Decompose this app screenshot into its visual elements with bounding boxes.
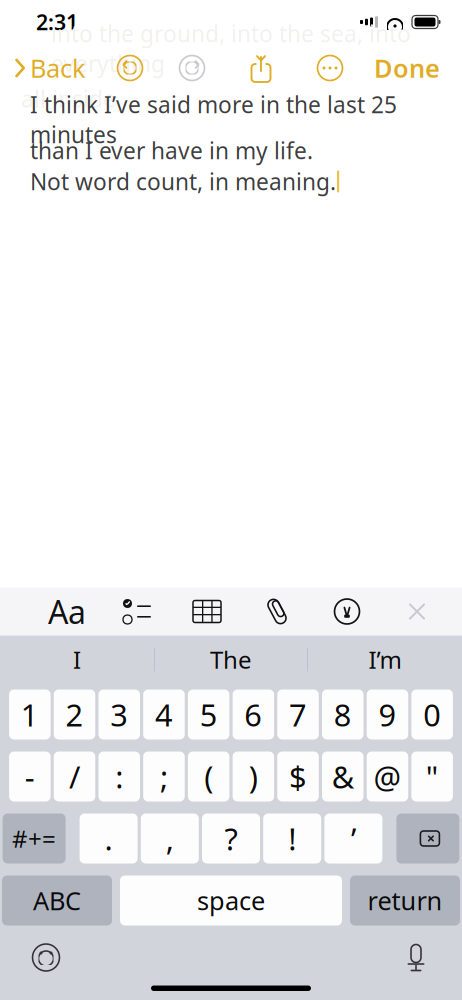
staticText: 3: [110, 694, 128, 735]
staticText: 7: [289, 694, 307, 735]
button[interactable]: The: [155, 637, 307, 681]
staticText: ;: [160, 756, 168, 797]
staticText: 6: [244, 694, 262, 735]
button[interactable]: @: [367, 751, 408, 801]
button[interactable]: 9: [367, 689, 408, 739]
button[interactable]: 1: [9, 689, 51, 739]
staticText: 5: [200, 694, 218, 735]
button[interactable]: space: [120, 875, 342, 925]
button[interactable]: Back: [0, 43, 86, 93]
button[interactable]: 7: [277, 689, 319, 739]
staticText: &: [332, 756, 354, 797]
staticText: Aa: [48, 590, 86, 633]
staticText: I think I’ve said more in the last 25 mi…: [30, 89, 397, 150]
button[interactable]: Close keyboard: [394, 589, 440, 633]
button[interactable]: I: [0, 637, 154, 681]
button[interactable]: Share: [242, 51, 280, 85]
button[interactable]: More: [310, 49, 350, 87]
staticText: :: [115, 756, 123, 797]
staticText: 4: [155, 694, 173, 735]
staticText: Done: [374, 51, 440, 85]
staticText: I: [73, 644, 81, 675]
staticText: ABC: [33, 884, 81, 917]
button[interactable]: :: [98, 751, 140, 801]
staticText: ): [249, 756, 258, 797]
button[interactable]: Redo: [172, 49, 212, 87]
button[interactable]: Undo: [110, 49, 150, 87]
button[interactable]: ;: [143, 751, 185, 801]
button[interactable]: Dictate: [392, 935, 462, 979]
button[interactable]: -: [9, 751, 51, 801]
button[interactable]: 4: [143, 689, 185, 739]
button[interactable]: Emoji: [0, 935, 70, 979]
staticText: !: [288, 818, 296, 859]
staticText: space: [197, 884, 265, 917]
button[interactable]: 6: [233, 689, 274, 739]
staticText: #+=: [12, 823, 56, 854]
button[interactable]: ABC: [2, 875, 112, 925]
button[interactable]: return: [350, 875, 460, 925]
staticText: 0: [423, 694, 441, 735]
button[interactable]: 0: [411, 689, 453, 739]
staticText: .: [105, 818, 113, 859]
button[interactable]: Delete: [396, 813, 459, 863]
staticText: 2:31: [36, 8, 78, 36]
button[interactable]: Aa: [44, 589, 90, 633]
button[interactable]: $: [277, 751, 319, 801]
button[interactable]: /: [54, 751, 95, 801]
staticText: @: [373, 756, 401, 797]
button[interactable]: 2: [54, 689, 95, 739]
button[interactable]: #+=: [3, 813, 66, 863]
button[interactable]: Attach: [254, 589, 300, 633]
staticText: $: [289, 756, 307, 797]
button[interactable]: ’: [324, 813, 382, 863]
button[interactable]: ?: [202, 813, 260, 863]
staticText: Not word count, in meaning.: [30, 166, 336, 196]
staticText: I’m: [368, 644, 401, 675]
button[interactable]: ): [233, 751, 274, 801]
staticText: ’: [351, 818, 356, 859]
staticText: -: [25, 756, 35, 797]
staticText: Back: [30, 51, 86, 85]
button[interactable]: Checklist: [114, 589, 160, 633]
staticText: 8: [334, 694, 352, 735]
staticText: /: [69, 756, 80, 797]
button[interactable]: .: [80, 813, 138, 863]
staticText: than I ever have in my life.: [30, 135, 313, 165]
staticText: 9: [378, 694, 396, 735]
staticText: ,: [166, 818, 174, 859]
staticText: ?: [224, 818, 237, 859]
button[interactable]: Done: [374, 43, 462, 93]
button[interactable]: &: [322, 751, 363, 801]
staticText: all inside: [21, 84, 116, 114]
button[interactable]: Table: [184, 589, 230, 633]
button[interactable]: !: [263, 813, 321, 863]
staticText: ": [426, 756, 439, 797]
button[interactable]: 8: [322, 689, 363, 739]
button[interactable]: (: [188, 751, 229, 801]
staticText: The: [210, 644, 252, 675]
staticText: into the ground, into the sea, into ever…: [51, 18, 411, 78]
button[interactable]: ": [411, 751, 453, 801]
staticText: 2: [65, 694, 83, 735]
button[interactable]: 3: [98, 689, 140, 739]
staticText: 1: [21, 694, 39, 735]
button[interactable]: 5: [188, 689, 229, 739]
staticText: (: [204, 756, 213, 797]
button[interactable]: I’m: [308, 637, 462, 681]
staticText: return: [367, 884, 442, 917]
button[interactable]: Markup: [324, 589, 370, 633]
button[interactable]: ,: [141, 813, 199, 863]
